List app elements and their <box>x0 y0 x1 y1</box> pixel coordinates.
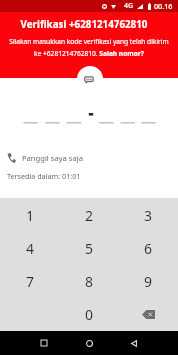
button[interactable]: 0 <box>60 298 119 331</box>
staticText: 6 <box>144 239 153 258</box>
button[interactable]: 2 <box>60 198 119 232</box>
button[interactable]: Back <box>122 331 146 355</box>
staticText: 0 <box>85 305 94 324</box>
button[interactable]: Backspace <box>119 298 178 331</box>
button[interactable]: SMS verification <box>77 66 103 92</box>
button[interactable]: 5 <box>60 232 119 265</box>
button[interactable]: 4 <box>0 232 60 265</box>
button[interactable]: Home <box>77 331 101 355</box>
staticText: 7 <box>26 272 35 291</box>
staticText: 8 <box>85 272 94 291</box>
button[interactable]: 8 <box>60 265 119 298</box>
staticText: Verifikasi +6281214762810 <box>0 18 168 31</box>
staticText: 1 <box>26 206 35 225</box>
staticText: 2 <box>85 206 94 225</box>
button[interactable]: 9 <box>119 265 178 298</box>
button[interactable]: Recent apps <box>32 331 56 355</box>
staticText: 4 <box>26 239 35 258</box>
button[interactable]: 1 <box>0 198 60 232</box>
staticText: Panggil saya saja <box>22 153 83 163</box>
staticText: 4G <box>124 1 134 11</box>
button[interactable]: 6 <box>119 232 178 265</box>
button[interactable]: Panggil saya saja <box>7 151 83 165</box>
button[interactable]: 7 <box>0 265 60 298</box>
staticText: Tersedia dalam: 01:01 <box>7 171 81 181</box>
staticText: 00.16 <box>154 1 173 11</box>
other: Backspace <box>142 310 155 319</box>
staticText: 9 <box>144 272 153 291</box>
staticText: 3 <box>144 206 153 225</box>
button[interactable]: 3 <box>119 198 178 232</box>
staticText: 5 <box>85 239 94 258</box>
staticText: Silakan masukkan kode verifikasi yang te… <box>0 37 178 58</box>
